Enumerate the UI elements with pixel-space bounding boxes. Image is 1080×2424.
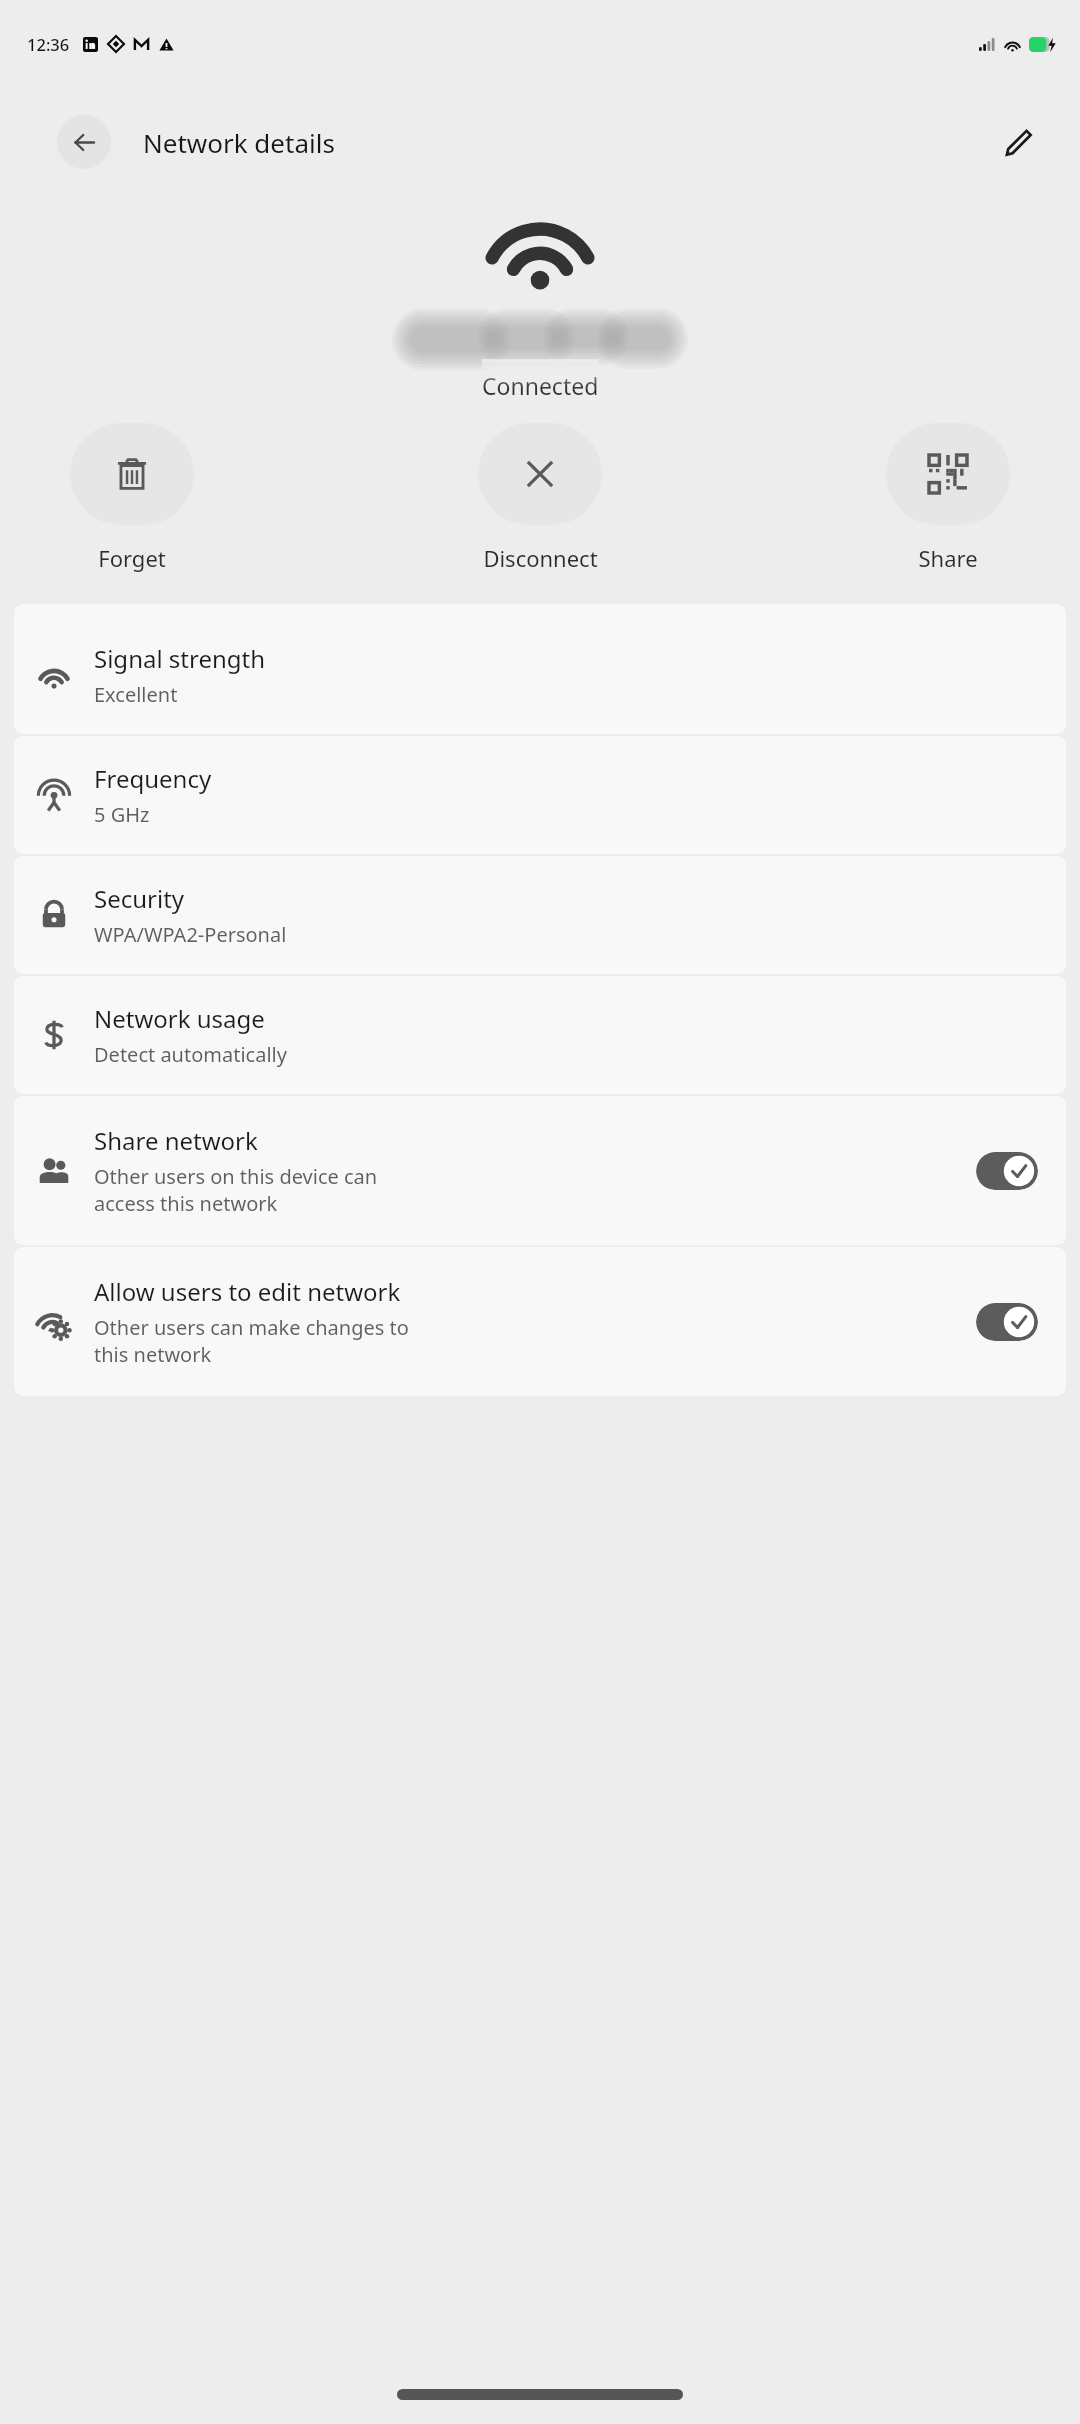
staticText: 5 GHz	[94, 801, 150, 828]
button[interactable]: Disconnect	[478, 423, 602, 573]
button[interactable]: Share	[886, 423, 1010, 573]
staticText: Connected	[482, 370, 599, 401]
button[interactable]	[976, 1152, 1038, 1190]
staticText: Signal strength	[94, 642, 266, 675]
staticText: Security	[94, 882, 185, 915]
staticText: Other users on this device can access th…	[94, 1163, 378, 1217]
button[interactable]: Share network	[14, 1096, 1066, 1245]
button[interactable]: Security	[14, 856, 1066, 974]
button[interactable]: Back	[57, 115, 111, 169]
staticText: Detect automatically	[94, 1041, 287, 1068]
staticText: Share network	[94, 1124, 258, 1157]
staticText: Allow users to edit network	[94, 1275, 401, 1308]
staticText: Forget	[98, 543, 166, 573]
button[interactable]: Forget	[70, 423, 194, 573]
staticText: Share	[918, 543, 978, 573]
staticText: 12:36	[27, 33, 70, 55]
staticText: Excellent	[94, 681, 178, 708]
button[interactable]: Frequency	[14, 736, 1066, 854]
staticText: Other users can make changes to this net…	[94, 1314, 409, 1368]
staticText: WPA/WPA2-Personal	[94, 921, 287, 948]
button[interactable]: Edit	[992, 116, 1044, 168]
staticText: Frequency	[94, 762, 212, 795]
button[interactable]: Signal strength	[14, 604, 1066, 734]
staticText: Disconnect	[483, 543, 598, 573]
button[interactable]: Network usage	[14, 976, 1066, 1094]
button[interactable]	[976, 1303, 1038, 1341]
button[interactable]: Allow users to edit network	[14, 1247, 1066, 1396]
staticText: Network usage	[94, 1002, 265, 1035]
staticText: Network details	[143, 125, 335, 160]
